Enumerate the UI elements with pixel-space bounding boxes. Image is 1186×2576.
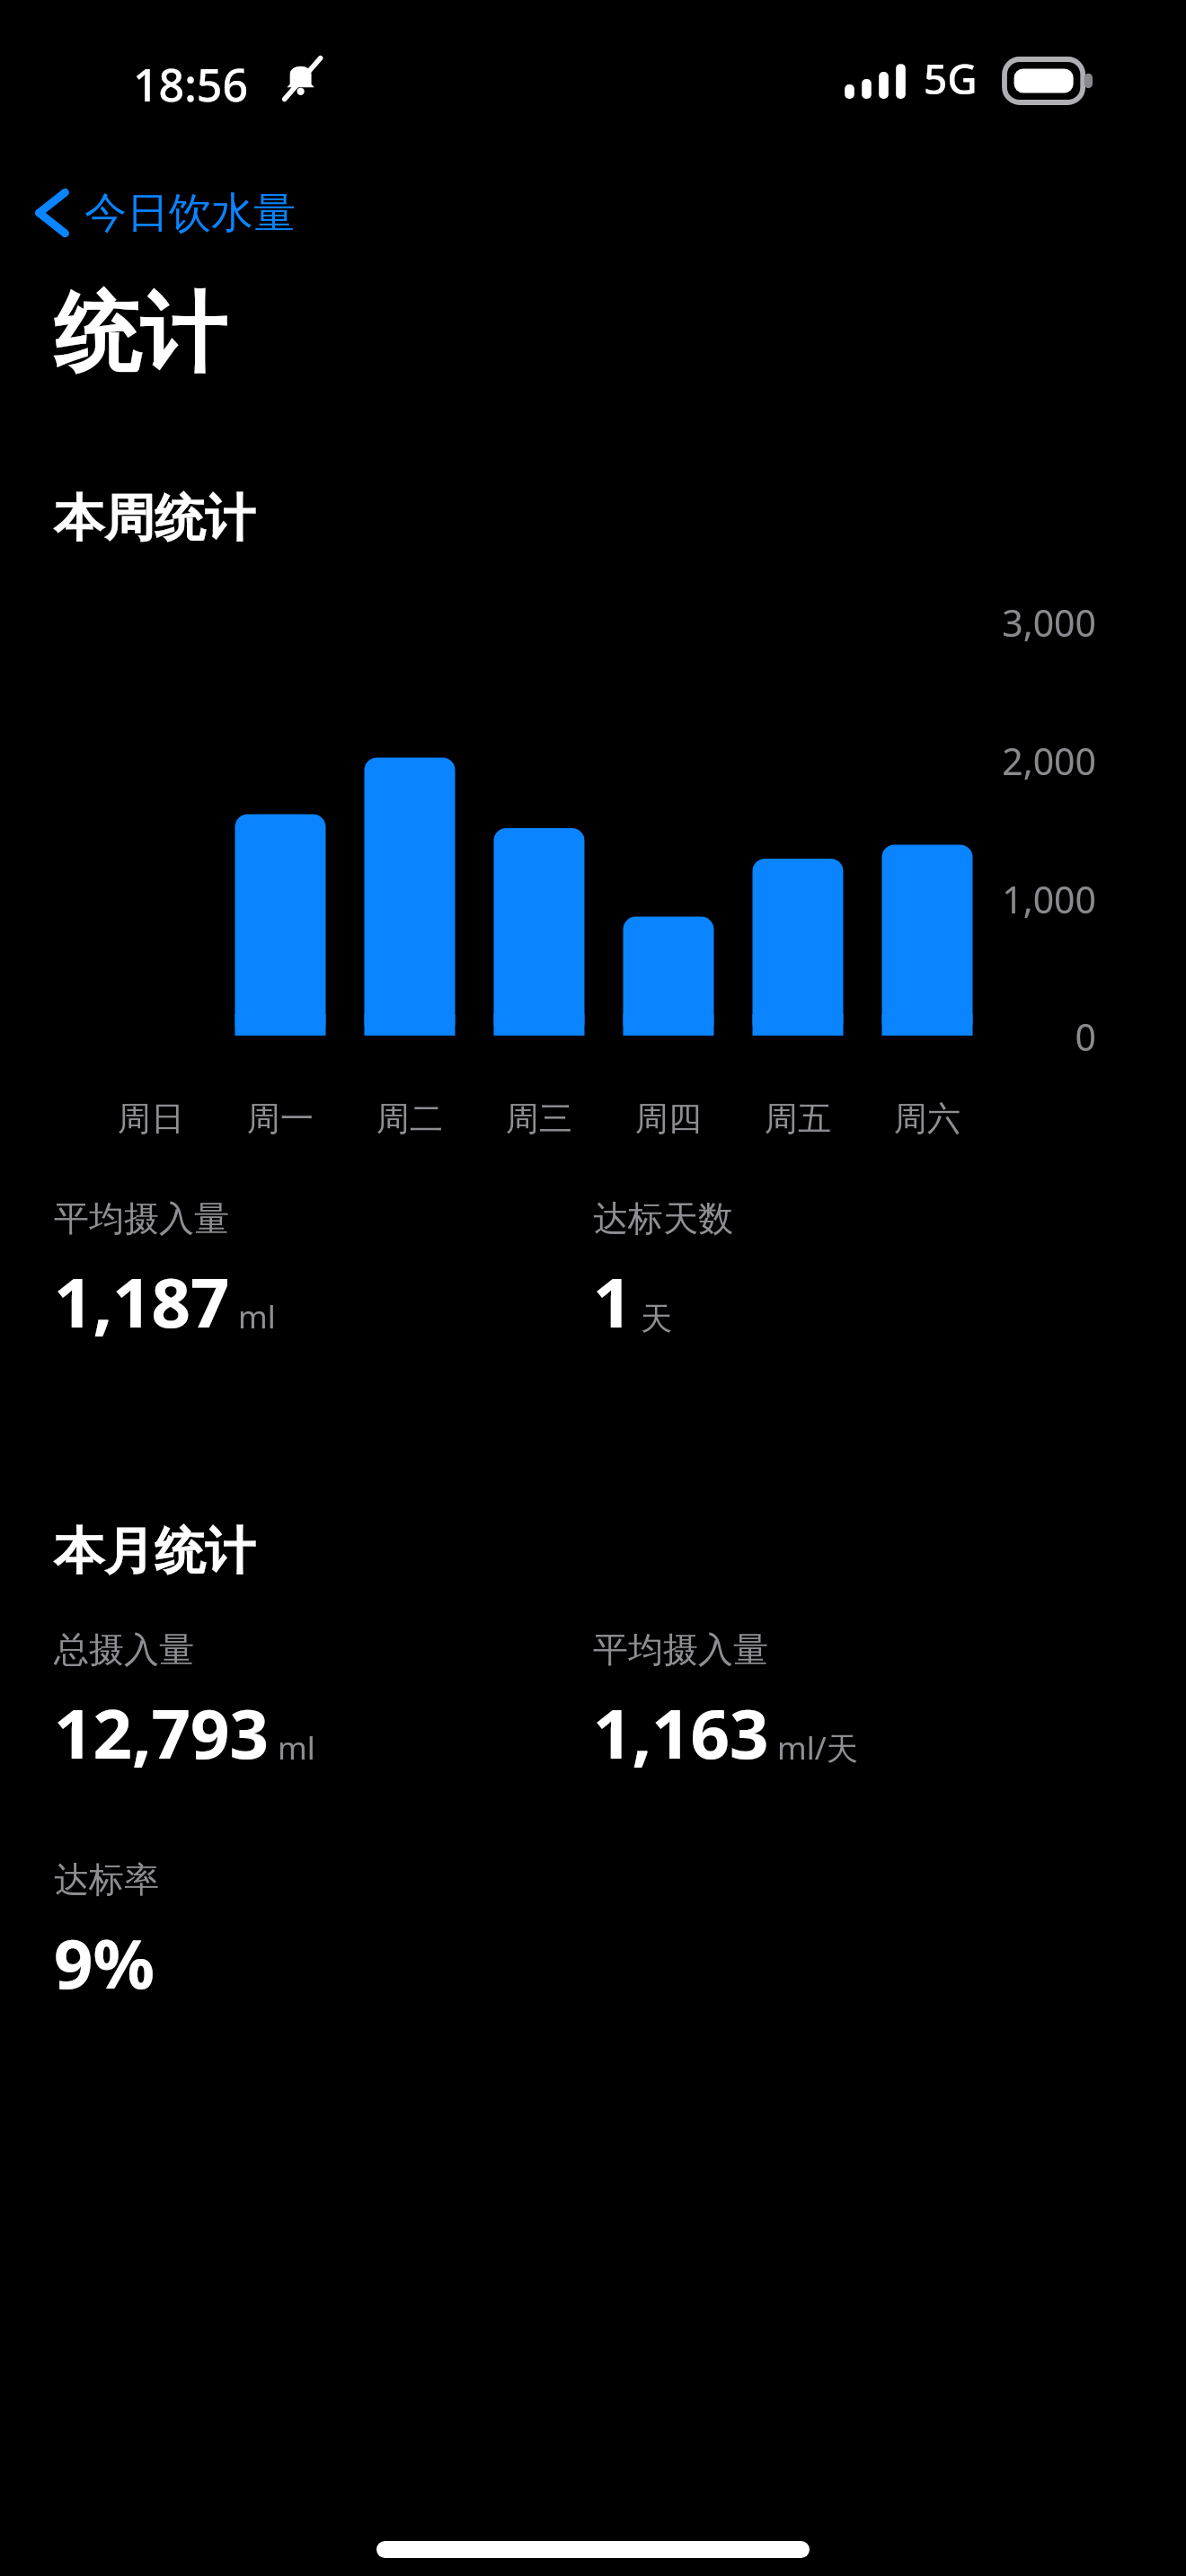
- staticText: 9%: [54, 1916, 155, 2009]
- staticText: 0: [934, 1011, 1096, 1062]
- staticText: 1,000: [934, 874, 1096, 924]
- staticText: ml/天: [777, 1726, 858, 1769]
- staticText: 平均摄入量: [593, 1628, 768, 1672]
- staticText: 18:56: [133, 54, 248, 115]
- staticText: 1: [593, 1255, 633, 1348]
- staticText: 达标率: [54, 1857, 159, 1901]
- button[interactable]: 达标天数: [593, 1196, 1078, 1348]
- staticText: 1,187: [54, 1255, 230, 1348]
- other: 静音: [281, 56, 323, 102]
- staticText: 1,163: [593, 1686, 769, 1779]
- staticText: ml: [238, 1295, 276, 1338]
- staticText: 周四: [615, 1098, 722, 1140]
- staticText: 统计: [54, 280, 226, 389]
- staticText: 今日饮水量: [84, 187, 296, 240]
- staticText: 3,000: [934, 597, 1096, 648]
- staticText: 本月统计: [54, 1520, 255, 1584]
- staticText: 周六: [873, 1098, 981, 1140]
- button[interactable]: 平均摄入量: [593, 1628, 1078, 1779]
- staticText: 5G: [924, 50, 978, 107]
- staticText: 周三: [485, 1098, 593, 1140]
- other: 返回: [36, 187, 68, 239]
- staticText: 周一: [226, 1098, 334, 1140]
- staticText: 达标天数: [593, 1196, 733, 1240]
- staticText: 周日: [97, 1098, 205, 1140]
- staticText: 平均摄入量: [54, 1196, 229, 1240]
- button[interactable]: 总摄入量: [54, 1628, 539, 1779]
- staticText: 天: [641, 1299, 672, 1338]
- staticText: ml: [278, 1726, 315, 1769]
- button[interactable]: 返回: [23, 174, 308, 251]
- button[interactable]: 达标率: [54, 1857, 539, 2009]
- staticText: 2,000: [934, 736, 1096, 786]
- staticText: 周五: [744, 1098, 852, 1140]
- button[interactable]: 平均摄入量: [54, 1196, 539, 1348]
- staticText: 本周统计: [54, 487, 255, 551]
- staticText: 12,793: [54, 1686, 270, 1779]
- staticText: 总摄入量: [54, 1628, 194, 1672]
- staticText: 周二: [356, 1098, 464, 1140]
